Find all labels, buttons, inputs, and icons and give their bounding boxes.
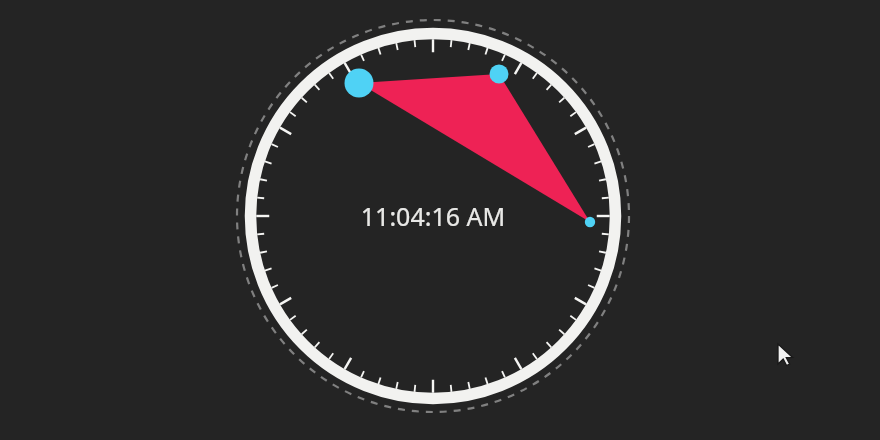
button[interactable]: Analog clock face showing 11:04:16 AM [0, 0, 880, 440]
